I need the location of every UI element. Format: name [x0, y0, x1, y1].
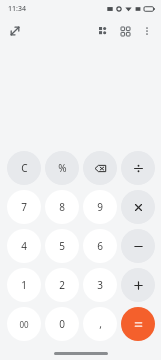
- staticText: 0: [59, 317, 65, 331]
- button[interactable]: %: [45, 151, 79, 185]
- staticText: C: [21, 161, 28, 175]
- staticText: 11:34: [8, 4, 26, 14]
- button[interactable]: 5: [45, 229, 79, 263]
- button[interactable]: Equals: [121, 307, 155, 341]
- button[interactable]: 9: [83, 190, 117, 224]
- staticText: ,: [99, 317, 102, 331]
- button[interactable]: 1: [7, 268, 41, 302]
- staticText: 4: [21, 239, 27, 253]
- button[interactable]: Converter: [92, 20, 114, 42]
- button[interactable]: 7: [7, 190, 41, 224]
- button[interactable]: Backspace: [83, 151, 117, 185]
- button[interactable]: 8: [45, 190, 79, 224]
- staticText: 1: [21, 278, 27, 292]
- button[interactable]: 4: [7, 229, 41, 263]
- button[interactable]: Expand scientific: [4, 20, 26, 42]
- staticText: 8: [59, 200, 65, 214]
- button[interactable]: Minus: [121, 229, 155, 263]
- staticText: 7: [21, 200, 27, 214]
- button[interactable]: Apps grid: [114, 20, 136, 42]
- staticText: 9: [97, 200, 103, 214]
- button[interactable]: 0: [45, 307, 79, 341]
- button[interactable]: Divide: [121, 151, 155, 185]
- button[interactable]: Plus: [121, 268, 155, 302]
- staticText: 2: [59, 278, 65, 292]
- button[interactable]: 2: [45, 268, 79, 302]
- staticText: 3: [97, 278, 103, 292]
- staticText: %: [58, 161, 67, 175]
- button[interactable]: C: [7, 151, 41, 185]
- button[interactable]: Multiply: [121, 190, 155, 224]
- staticText: 00: [19, 319, 29, 330]
- button[interactable]: 6: [83, 229, 117, 263]
- button[interactable]: More options: [136, 20, 158, 42]
- staticText: 5: [59, 239, 65, 253]
- button[interactable]: 3: [83, 268, 117, 302]
- staticText: 6: [97, 239, 103, 253]
- button[interactable]: 00: [7, 307, 41, 341]
- button[interactable]: ,: [83, 307, 117, 341]
